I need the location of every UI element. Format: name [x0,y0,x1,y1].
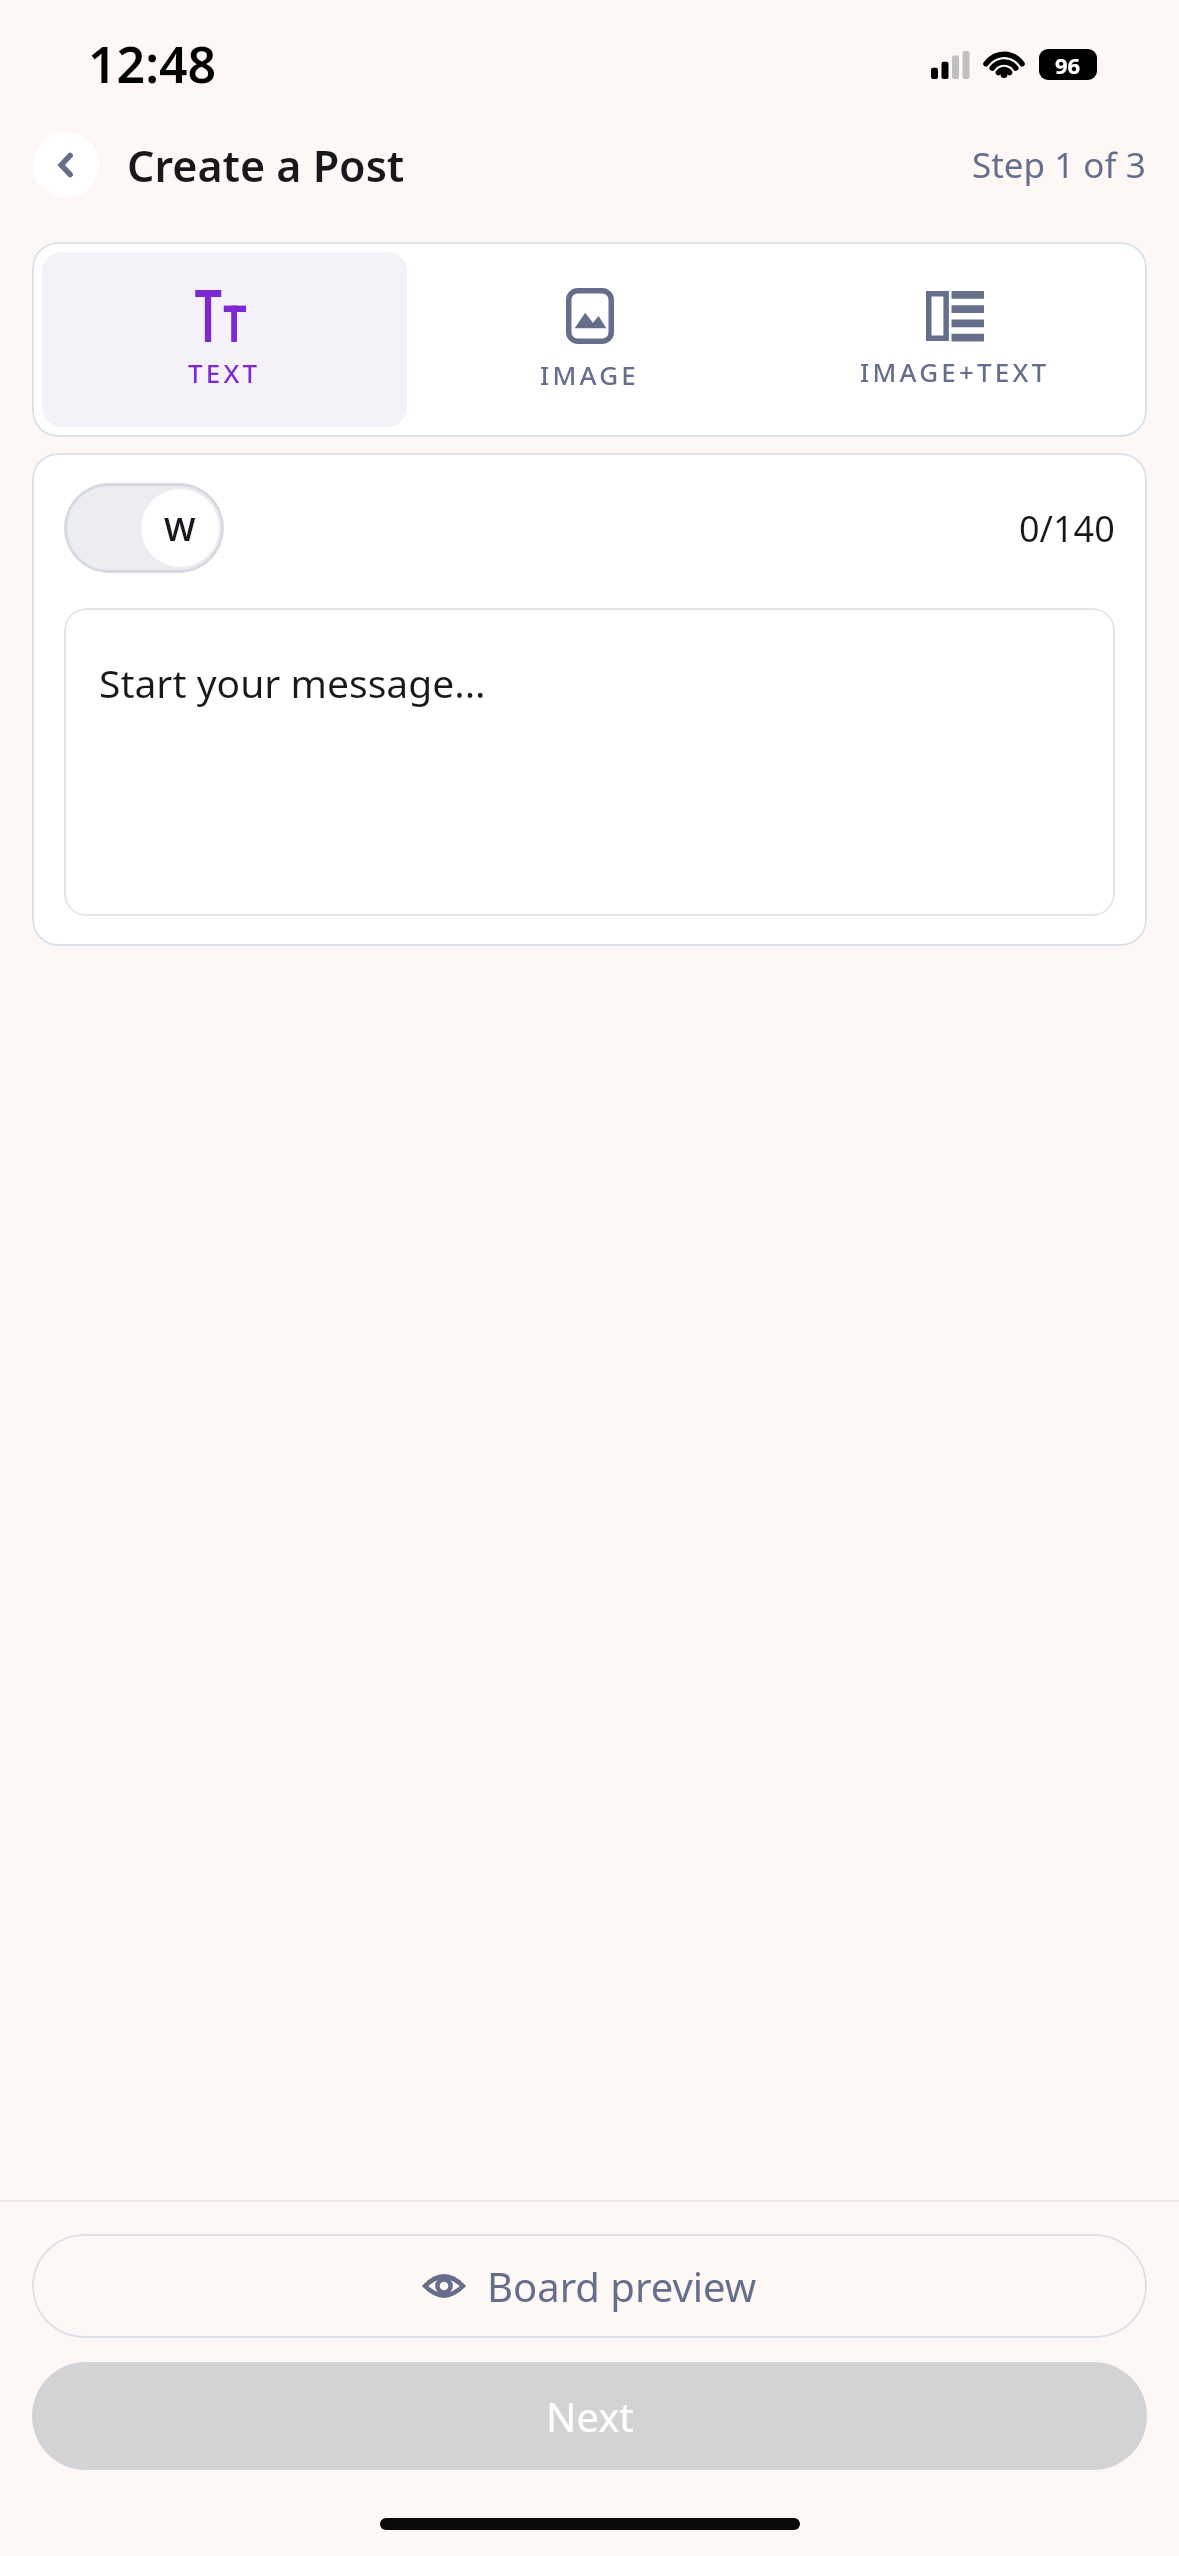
button[interactable]: IMAGE [407,252,772,427]
staticText: Start your message... [99,656,486,709]
staticText: Step 1 of 3 [972,141,1146,189]
staticText: 12:48 [88,30,217,98]
button[interactable]: Toggle word mode [64,483,224,573]
staticText: W [164,506,196,551]
staticText: TEXT [188,355,261,390]
staticText: Create a Post [127,136,405,195]
staticText: 0/140 [1019,504,1115,553]
button[interactable]: TEXT [42,252,407,427]
button[interactable]: Start your message... [64,608,1115,916]
staticText: 96 [1055,50,1081,80]
button[interactable]: Board preview [32,2234,1147,2338]
staticText: Board preview [487,2259,757,2313]
staticText: IMAGE+TEXT [860,354,1050,389]
button[interactable]: Back [33,132,99,198]
staticText: IMAGE [540,357,639,392]
staticText: Next [546,2389,634,2443]
button[interactable]: Next [32,2362,1147,2470]
button[interactable]: IMAGE+TEXT [772,252,1137,427]
